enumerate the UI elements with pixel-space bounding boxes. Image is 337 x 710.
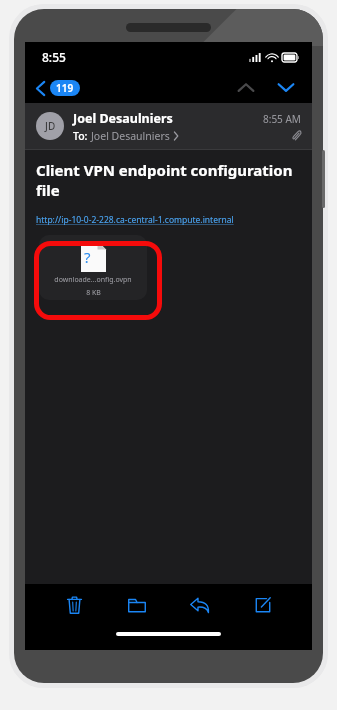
button[interactable]: Previous message (232, 77, 260, 98)
button[interactable]: Move to folder (105, 592, 168, 619)
staticText: To: (73, 129, 91, 143)
staticText: 8:55 AM (263, 112, 301, 126)
staticText: Joel Desaulniers (73, 110, 173, 127)
staticText: 119 (56, 81, 74, 95)
button[interactable]: Next message (272, 77, 300, 98)
button[interactable]: Back (33, 77, 83, 99)
staticText: Joel Desaulniers (91, 129, 170, 143)
staticText: 8 KB (86, 288, 101, 298)
button[interactable]: Delete (43, 590, 105, 620)
staticText: 8:55 (42, 49, 66, 65)
staticText: downloade...onfig.ovpn (54, 275, 132, 285)
staticText: JD (45, 119, 56, 133)
staticText: ? (84, 247, 91, 267)
button[interactable]: downloade...onfig.ovpn (39, 235, 147, 300)
button[interactable]: Reply (168, 591, 231, 619)
staticText: http://ip-10-0-2-228.ca-central-1.comput… (36, 214, 234, 226)
other: Back (36, 81, 45, 96)
button[interactable]: http://ip-10-0-2-228.ca-central-1.comput… (36, 214, 234, 226)
button[interactable]: JD (25, 103, 312, 149)
button[interactable]: Compose (231, 591, 294, 619)
staticText: Client VPN endpoint configuration file (36, 160, 301, 200)
